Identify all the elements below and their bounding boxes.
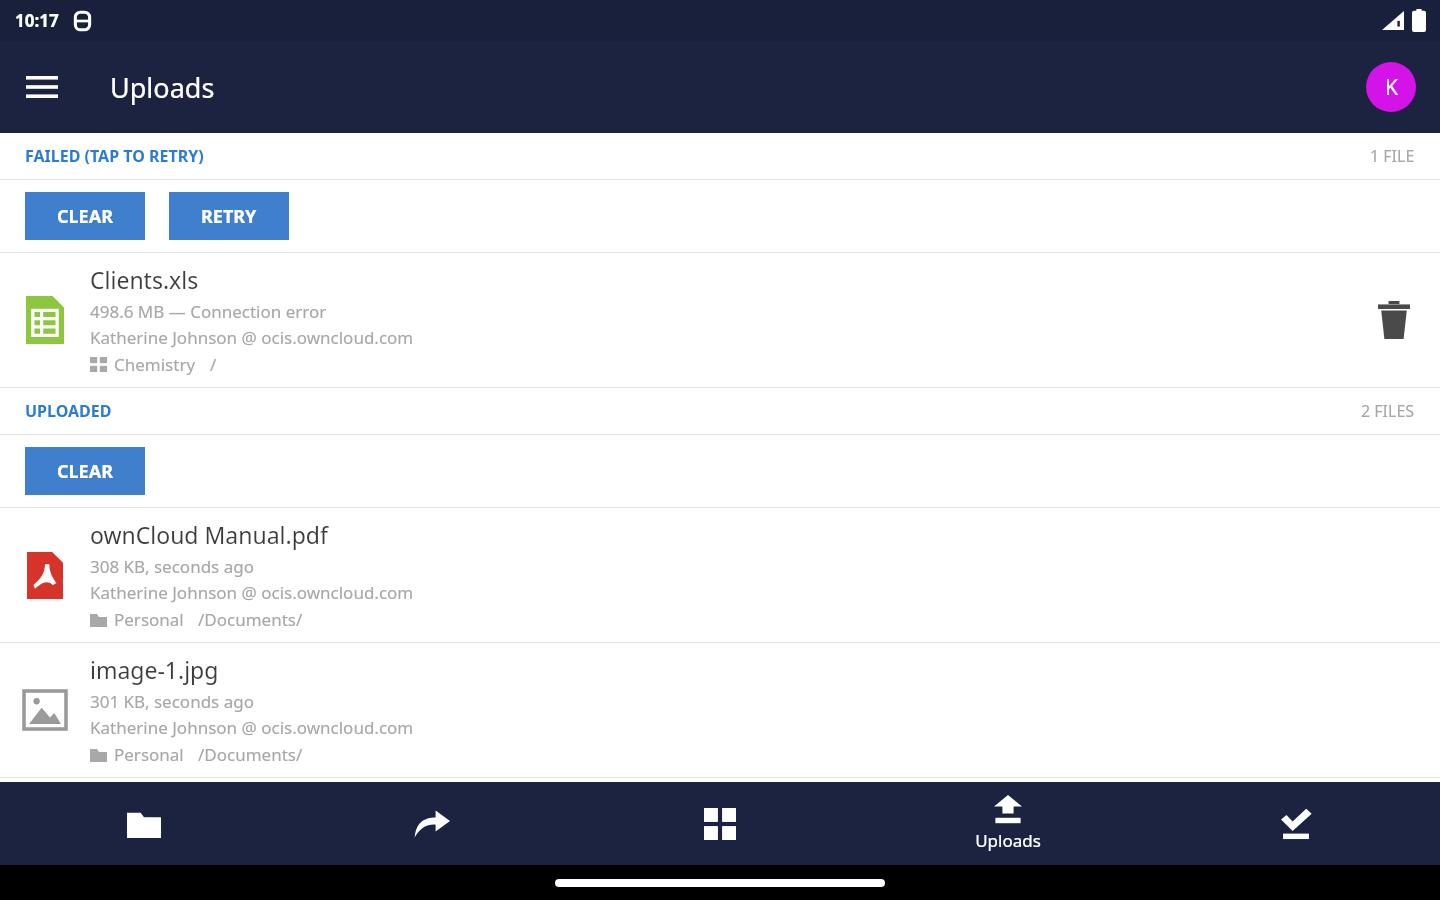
staticText: /Documents/ xyxy=(198,608,303,631)
staticText: Katherine Johnson @ ocis.owncloud.com xyxy=(90,716,414,739)
staticText: image-1.jpg xyxy=(90,654,219,685)
staticText: K xyxy=(1385,73,1398,102)
staticText: Uploads xyxy=(110,69,215,106)
button[interactable]: Open navigation drawer xyxy=(10,55,74,119)
button[interactable]: Uploads xyxy=(864,782,1152,865)
button[interactable]: image-1.jpg xyxy=(0,643,1440,777)
staticText: 1 FILE xyxy=(1370,145,1415,167)
staticText: 10:17 xyxy=(15,9,59,32)
button[interactable]: Clients.xls xyxy=(0,253,1440,387)
button[interactable]: ownCloud Manual.pdf xyxy=(0,508,1440,642)
staticText: FAILED (TAP TO RETRY) xyxy=(25,145,204,167)
button[interactable]: Spaces xyxy=(576,782,864,865)
staticText: 308 KB, seconds ago xyxy=(90,555,254,578)
staticText: CLEAR xyxy=(57,459,113,484)
staticText: Chemistry xyxy=(114,353,196,376)
button[interactable]: Remove upload xyxy=(1348,253,1440,387)
staticText: Katherine Johnson @ ocis.owncloud.com xyxy=(90,581,414,604)
staticText: 498.6 MB — Connection error xyxy=(90,300,327,323)
staticText: RETRY xyxy=(201,204,257,229)
staticText: Personal xyxy=(114,608,184,631)
staticText: Clients.xls xyxy=(90,264,199,295)
button[interactable]: Files xyxy=(0,782,288,865)
staticText: Uploads xyxy=(975,829,1041,852)
staticText: CLEAR xyxy=(57,204,113,229)
staticText: Personal xyxy=(114,743,184,766)
button[interactable]: CLEAR xyxy=(25,447,145,495)
staticText: /Documents/ xyxy=(198,743,303,766)
button[interactable]: Available offline xyxy=(1152,782,1440,865)
staticText: 2 FILES xyxy=(1361,400,1415,422)
button[interactable]: CLEAR xyxy=(25,192,145,240)
staticText: ownCloud Manual.pdf xyxy=(90,519,328,550)
staticText: UPLOADED xyxy=(25,400,112,422)
staticText: Katherine Johnson @ ocis.owncloud.com xyxy=(90,326,414,349)
button[interactable]: RETRY xyxy=(169,192,289,240)
button[interactable]: Account xyxy=(1366,62,1416,112)
staticText: 301 KB, seconds ago xyxy=(90,690,254,713)
staticText: / xyxy=(210,353,217,376)
button[interactable]: Shares xyxy=(288,782,576,865)
